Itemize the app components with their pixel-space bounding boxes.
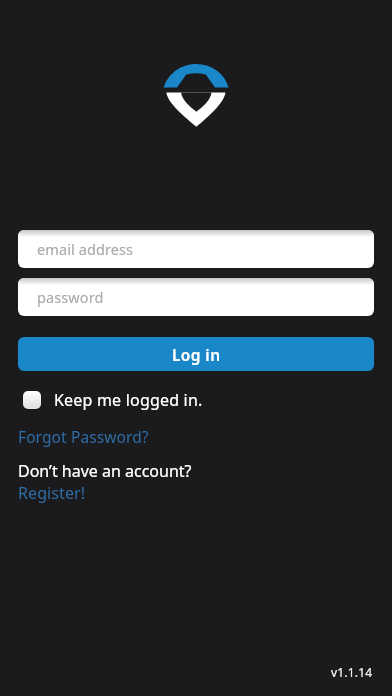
staticText: Don’t have an account? [18,460,192,482]
button[interactable]: Forgot Password? [18,426,149,447]
button[interactable]: Log in [18,337,374,371]
staticText: Log in [172,344,221,365]
button[interactable]: email address [18,230,374,268]
button[interactable]: password [18,278,374,316]
staticText: email address [37,239,134,259]
staticText: Keep me logged in. [54,389,203,411]
staticText: v1.1.14 [331,664,373,680]
staticText: password [37,287,104,307]
button[interactable]: Register! [18,482,86,504]
button[interactable]: Keep me logged in. [23,389,203,411]
